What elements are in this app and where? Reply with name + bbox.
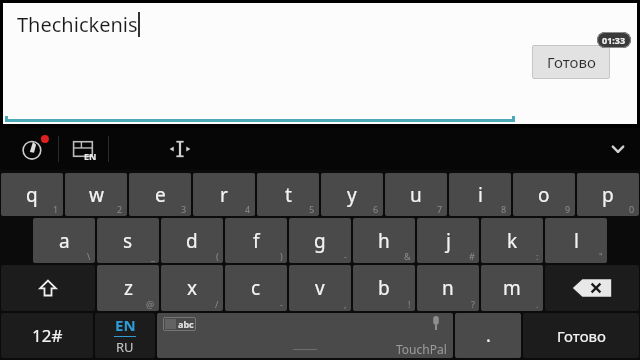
- staticText: Готово: [547, 52, 596, 72]
- staticText: ): [280, 250, 283, 262]
- button[interactable]: l: [545, 218, 607, 263]
- staticText: 7: [437, 203, 443, 215]
- button[interactable]: w: [65, 173, 127, 216]
- staticText: !: [408, 298, 411, 310]
- staticText: 12#: [32, 324, 63, 347]
- button[interactable]: t: [257, 173, 319, 216]
- button[interactable]: m: [481, 265, 543, 311]
- staticText: q: [26, 182, 38, 208]
- button[interactable]: Готово: [523, 313, 639, 358]
- staticText: d: [186, 228, 198, 254]
- button[interactable]: a: [33, 218, 95, 263]
- staticText: ?: [471, 298, 475, 310]
- staticText: ": [599, 250, 603, 262]
- staticText: TouchPal: [396, 341, 447, 357]
- staticText: n: [442, 275, 454, 301]
- staticText: f: [253, 228, 260, 254]
- staticText: &: [404, 250, 411, 262]
- staticText: 1: [53, 203, 59, 215]
- staticText: c: [251, 275, 261, 301]
- staticText: h: [378, 228, 390, 254]
- staticText: w: [89, 182, 104, 208]
- staticText: 0: [629, 203, 635, 215]
- button[interactable]: EN: [95, 313, 155, 358]
- staticText: k: [507, 228, 518, 254]
- button[interactable]: Handwriting input: [12, 128, 56, 170]
- button[interactable]: z: [97, 265, 159, 311]
- staticText: b: [378, 275, 390, 301]
- staticText: abc: [178, 318, 194, 330]
- button[interactable]: k: [481, 218, 543, 263]
- staticText: m: [503, 275, 521, 301]
- staticText: EN: [84, 150, 97, 162]
- staticText: (: [216, 250, 219, 262]
- staticText: /: [215, 298, 219, 310]
- staticText: -: [344, 250, 347, 262]
- button[interactable]: q: [1, 173, 63, 216]
- staticText: @: [146, 298, 155, 310]
- staticText: r: [220, 182, 228, 208]
- button[interactable]: y: [321, 173, 383, 216]
- button[interactable]: x: [161, 265, 223, 311]
- staticText: u: [410, 182, 422, 208]
- staticText: g: [314, 228, 326, 254]
- staticText: x: [187, 275, 198, 301]
- button[interactable]: b: [353, 265, 415, 311]
- staticText: p: [602, 182, 614, 208]
- button[interactable]: Thechickenis: [3, 3, 637, 124]
- button[interactable]: Backspace: [545, 265, 639, 311]
- staticText: e: [155, 182, 166, 208]
- button[interactable]: c: [225, 265, 287, 311]
- button[interactable]: v: [289, 265, 351, 311]
- staticText: -: [280, 298, 283, 310]
- button[interactable]: d: [161, 218, 223, 263]
- staticText: EN: [115, 315, 136, 335]
- button[interactable]: e: [129, 173, 191, 216]
- button[interactable]: j: [417, 218, 479, 263]
- button[interactable]: .: [455, 313, 521, 358]
- staticText: Thechickenis: [17, 11, 138, 38]
- staticText: j: [446, 228, 451, 254]
- staticText: #: [469, 250, 475, 262]
- button[interactable]: Keyboard layout EN: [62, 128, 106, 170]
- staticText: ,: [344, 298, 347, 310]
- button[interactable]: n: [417, 265, 479, 311]
- button[interactable]: h: [353, 218, 415, 263]
- staticText: a: [59, 228, 70, 254]
- staticText: 5: [309, 203, 315, 215]
- staticText: t: [285, 182, 292, 208]
- button[interactable]: 12#: [1, 313, 93, 358]
- staticText: 4: [245, 203, 251, 215]
- staticText: i: [478, 182, 483, 208]
- staticText: z: [124, 275, 133, 301]
- staticText: _: [151, 250, 155, 262]
- staticText: RU: [116, 338, 134, 356]
- staticText: l: [574, 228, 579, 254]
- button[interactable]: o: [513, 173, 575, 216]
- button[interactable]: f: [225, 218, 287, 263]
- button[interactable]: s: [97, 218, 159, 263]
- staticText: 8: [501, 203, 507, 215]
- staticText: \: [87, 250, 91, 262]
- button[interactable]: Space: [157, 313, 453, 358]
- button[interactable]: Hide keyboard: [596, 128, 640, 170]
- staticText: s: [123, 228, 133, 254]
- button[interactable]: u: [385, 173, 447, 216]
- button[interactable]: Move cursor: [158, 128, 202, 170]
- staticText: 2: [117, 203, 123, 215]
- staticText: 01:33: [602, 34, 626, 46]
- staticText: 6: [373, 203, 379, 215]
- staticText: .: [536, 298, 539, 310]
- staticText: y: [347, 182, 357, 208]
- button[interactable]: Shift: [1, 265, 95, 311]
- button[interactable]: i: [449, 173, 511, 216]
- staticText: :: [536, 250, 539, 262]
- button[interactable]: Готово: [532, 45, 610, 79]
- button[interactable]: p: [577, 173, 639, 216]
- staticText: .: [486, 323, 491, 348]
- staticText: o: [538, 182, 550, 208]
- staticText: Готово: [557, 326, 606, 346]
- button[interactable]: r: [193, 173, 255, 216]
- staticText: 3: [181, 203, 187, 215]
- button[interactable]: g: [289, 218, 351, 263]
